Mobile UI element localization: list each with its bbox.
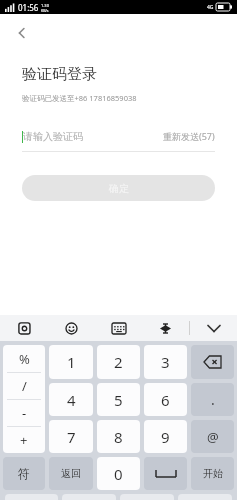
button[interactable]: %	[3, 345, 45, 372]
button[interactable]: 4	[49, 383, 93, 416]
button[interactable]: Move cursor	[142, 315, 189, 341]
button[interactable]: Emoji	[48, 315, 95, 341]
staticText: 1.30	[41, 3, 49, 8]
button[interactable]: 7	[49, 420, 93, 453]
staticText: 2	[114, 352, 123, 372]
button[interactable]: 3	[144, 345, 187, 379]
staticText: 5	[114, 390, 123, 410]
button[interactable]: Input method	[0, 315, 48, 341]
staticText: 3	[161, 352, 170, 372]
staticText: %	[19, 350, 30, 368]
button[interactable]: -	[3, 400, 45, 426]
button[interactable]: 开始	[191, 457, 234, 490]
button[interactable]: .	[191, 383, 234, 416]
button[interactable]: 2	[97, 345, 140, 379]
button[interactable]: Keyboard layout	[95, 315, 142, 341]
staticText: 4G	[207, 4, 214, 11]
button[interactable]: 1	[49, 345, 93, 379]
staticText: 8	[114, 427, 123, 447]
button[interactable]: @	[191, 420, 234, 453]
staticText: 4	[67, 390, 76, 410]
staticText: KB/s	[41, 8, 49, 13]
button[interactable]: 返回	[49, 457, 93, 490]
button[interactable]: Space	[144, 457, 187, 490]
staticText: 返回	[61, 467, 81, 480]
staticText: 6	[161, 390, 170, 410]
staticText: 验证码登录	[22, 65, 97, 84]
staticText: /	[22, 377, 27, 395]
staticText: 符	[18, 466, 30, 481]
staticText: 验证码已发送至+86 17816859038	[22, 93, 137, 103]
staticText: 确定	[109, 182, 129, 195]
button[interactable]: Back	[0, 14, 44, 52]
staticText: 开始	[203, 467, 223, 480]
button[interactable]: Backspace	[191, 345, 234, 379]
staticText: 01:56	[18, 2, 39, 13]
button[interactable]: 重新发送(57)	[163, 130, 215, 142]
button[interactable]: 5	[97, 383, 140, 416]
staticText: .	[211, 390, 215, 409]
button[interactable]: +	[3, 427, 45, 453]
staticText: 9	[161, 427, 170, 447]
staticText: -	[22, 404, 27, 422]
button[interactable]: 0	[97, 457, 140, 490]
button[interactable]: 6	[144, 383, 187, 416]
staticText: 重新发送(57)	[163, 130, 215, 142]
staticText: 0	[114, 464, 123, 484]
button[interactable]: /	[3, 373, 45, 399]
button[interactable]: 确定	[22, 175, 215, 201]
staticText: 7	[67, 427, 76, 447]
staticText: 请输入验证码	[23, 130, 83, 143]
staticText: @	[207, 428, 219, 446]
button[interactable]: 8	[97, 420, 140, 453]
staticText: 1	[67, 352, 76, 372]
button[interactable]: 9	[144, 420, 187, 453]
button[interactable]: Hide keyboard	[190, 315, 237, 341]
button[interactable]: 符	[3, 457, 45, 490]
staticText: +	[20, 431, 28, 449]
